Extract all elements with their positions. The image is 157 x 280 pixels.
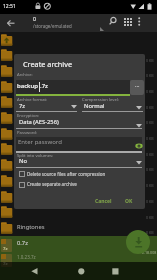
staticText: 0 KB — [146, 152, 154, 157]
button[interactable] — [16, 102, 77, 112]
button[interactable] — [16, 80, 130, 94]
staticText: 2.18.008 — [142, 250, 157, 255]
button[interactable]: OK — [122, 198, 136, 209]
button[interactable] — [126, 230, 150, 254]
staticText: Encryption: — [17, 113, 40, 119]
button[interactable] — [0, 236, 157, 280]
staticText: 0 KB — [146, 105, 154, 110]
button[interactable] — [134, 14, 146, 32]
button[interactable] — [7, 20, 15, 27]
staticText: 7z — [19, 102, 26, 110]
staticText: Cancel — [95, 198, 112, 205]
button[interactable] — [16, 119, 142, 128]
button[interactable] — [16, 159, 142, 168]
button[interactable]: Cancel — [92, 198, 114, 209]
button[interactable] — [31, 268, 38, 275]
staticText: .7z — [40, 82, 48, 90]
staticText: Data (AES-256) — [19, 118, 59, 126]
staticText: 0 KB — [146, 136, 154, 141]
button[interactable] — [16, 180, 142, 189]
staticText: 0 — [33, 15, 36, 22]
staticText: Ringtones — [17, 223, 45, 231]
staticText: Normal — [84, 102, 105, 110]
staticText: ... — [135, 81, 140, 88]
staticText: 0 KB — [146, 167, 154, 172]
staticText: Delete source files after compression — [27, 171, 106, 177]
staticText: 0 KB — [146, 58, 154, 63]
staticText: 0 KB — [146, 89, 154, 94]
staticText: 1.0.23.7z — [17, 254, 36, 260]
button[interactable] — [78, 268, 85, 275]
button[interactable] — [16, 137, 142, 151]
staticText: 0 KB — [146, 183, 154, 188]
staticText: 0 KB — [146, 73, 154, 78]
button[interactable] — [82, 102, 143, 112]
staticText: Create archive — [23, 59, 73, 69]
staticText: 0 KB — [146, 120, 154, 125]
staticText: 7z — [3, 260, 8, 266]
staticText: Archive format: — [17, 97, 48, 103]
staticText: Compression level: — [82, 97, 120, 103]
staticText: 0 KB — [146, 215, 154, 220]
button[interactable] — [112, 268, 119, 275]
staticText: Enter password — [18, 138, 62, 146]
staticText: Split into volumes: — [17, 153, 54, 159]
staticText: 0.7z — [17, 239, 28, 247]
staticText: Archive: — [17, 72, 33, 78]
button[interactable] — [121, 14, 135, 32]
staticText: 7z — [3, 245, 8, 251]
staticText: No — [19, 157, 27, 165]
staticText: Create separate archive — [27, 181, 77, 187]
staticText: backup — [17, 82, 38, 90]
staticText: OK — [125, 198, 133, 205]
staticText: 0 KB — [146, 199, 154, 204]
button[interactable] — [106, 14, 120, 32]
button[interactable] — [16, 169, 142, 178]
button[interactable]: ... — [130, 80, 144, 95]
staticText: Password: — [17, 130, 38, 136]
staticText: /storage/emulated — [33, 23, 72, 29]
staticText: 0 KB — [146, 230, 154, 235]
staticText: 12:51 — [3, 3, 16, 10]
